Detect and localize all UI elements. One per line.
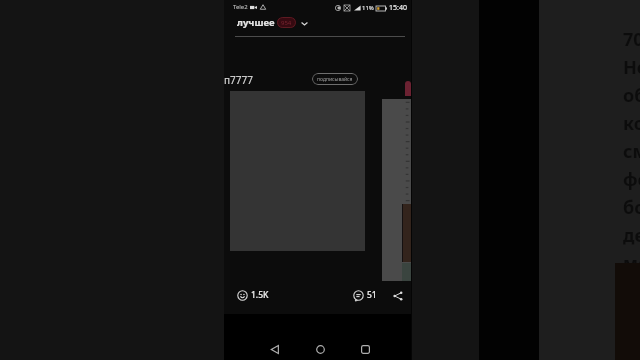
staticText: ко — [623, 111, 640, 136]
staticText: 11% — [362, 4, 374, 12]
button[interactable] — [382, 99, 411, 281]
button[interactable]: Share — [391, 289, 404, 302]
button[interactable]: Recent apps — [356, 340, 374, 358]
button[interactable]: подписывайся — [312, 73, 358, 85]
staticText: лучшее — [237, 16, 275, 29]
staticText: 954 — [281, 19, 292, 27]
other: Expand feed selector — [299, 18, 309, 28]
staticText: 15:40 — [389, 3, 407, 13]
button[interactable]: лучшее — [237, 16, 309, 29]
button[interactable]: Home — [311, 340, 329, 358]
button[interactable]: 1.5K — [237, 289, 269, 301]
button[interactable]: Back — [266, 340, 284, 358]
button[interactable]: п7777 — [224, 73, 253, 87]
staticText: подписывайся — [317, 76, 353, 83]
staticText: фо — [623, 167, 640, 192]
staticText: см — [623, 139, 640, 164]
staticText: бо — [623, 195, 640, 220]
staticText: де — [623, 223, 640, 248]
staticText: об — [623, 83, 640, 108]
button[interactable]: 51 — [353, 289, 377, 301]
staticText: мо — [623, 251, 640, 276]
staticText: Tele2 — [233, 3, 248, 11]
staticText: 70 — [623, 27, 640, 52]
staticText: 51 — [367, 289, 377, 301]
staticText: 1.5K — [251, 289, 269, 301]
staticText: Не — [623, 55, 640, 80]
